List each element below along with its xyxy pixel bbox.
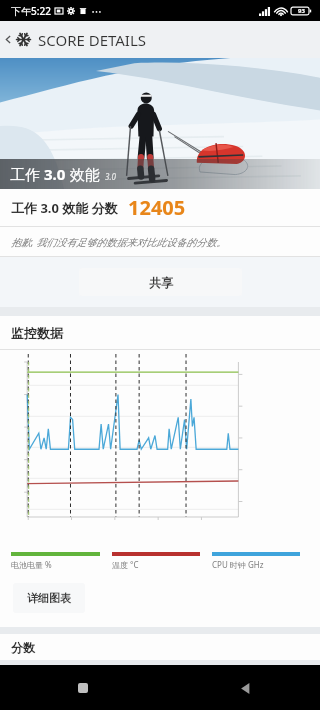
button[interactable]: Back [230, 673, 260, 703]
staticText: 详细图表 [27, 591, 71, 605]
staticText: 3.0 [105, 171, 116, 182]
staticText: 监控数据 [11, 325, 63, 341]
staticText: 12405 [128, 194, 186, 221]
staticText: SCORE DETAILS [38, 30, 147, 50]
staticText: 3.0 [44, 164, 66, 184]
staticText: 电池电量 % [11, 559, 52, 570]
staticText: CPU 时钟 GHz [212, 559, 264, 570]
staticText: 工作 [10, 164, 44, 184]
button[interactable]: 共享 [79, 268, 242, 296]
staticText: 工作 3.0 效能 分数 [11, 199, 118, 217]
staticText: 温度 °C [112, 559, 139, 570]
staticText: 抱歉, 我们没有足够的数据来对比此设备的分数。 [11, 235, 227, 249]
staticText: 效能 [66, 164, 100, 184]
button[interactable]: Back [0, 21, 16, 58]
staticText: 分数 [11, 640, 35, 655]
staticText: 下午5:22 [11, 4, 51, 18]
staticText: 共享 [149, 275, 173, 290]
button[interactable]: 详细图表 [13, 583, 85, 613]
staticText: 93 [298, 7, 305, 15]
button[interactable]: Recents [68, 673, 98, 703]
